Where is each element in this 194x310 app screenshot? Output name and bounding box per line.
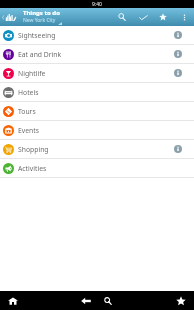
button[interactable]: Navigate up — [0, 8, 22, 26]
staticText: New York City — [23, 17, 56, 24]
button[interactable]: Hotels — [0, 83, 194, 102]
staticText: Sightseeing — [18, 31, 168, 40]
staticText: Events — [18, 126, 168, 135]
button[interactable]: Sightseeing — [0, 26, 194, 45]
button[interactable]: Activities — [0, 159, 194, 178]
staticText: Tours — [18, 107, 168, 116]
button[interactable]: Home — [4, 292, 22, 310]
button[interactable]: Search — [112, 8, 132, 26]
staticText: Eat and Drink — [18, 50, 168, 59]
button[interactable]: Back — [77, 292, 95, 310]
staticText: Activities — [18, 164, 168, 173]
staticText: Shopping — [18, 145, 168, 154]
button[interactable]: Information — [168, 26, 188, 44]
button[interactable]: Shopping — [0, 140, 194, 159]
button[interactable]: Bookmarks — [172, 292, 190, 310]
button[interactable]: Events — [0, 121, 194, 140]
button[interactable]: Information — [168, 45, 188, 63]
button[interactable]: Search — [99, 292, 117, 310]
staticText: 9:40 — [92, 1, 102, 8]
button[interactable]: Nightlife — [0, 64, 194, 83]
button[interactable]: More options — [174, 8, 194, 26]
button[interactable]: Eat and Drink — [0, 45, 194, 64]
staticText: Hotels — [18, 88, 168, 97]
button[interactable]: Information — [168, 140, 188, 158]
button[interactable]: Favorites — [153, 8, 173, 26]
button[interactable]: Tours — [0, 102, 194, 121]
staticText: Nightlife — [18, 69, 168, 78]
staticText: Things to do — [23, 9, 60, 17]
button[interactable]: Information — [168, 64, 188, 82]
button[interactable]: Edit list — [133, 8, 153, 26]
